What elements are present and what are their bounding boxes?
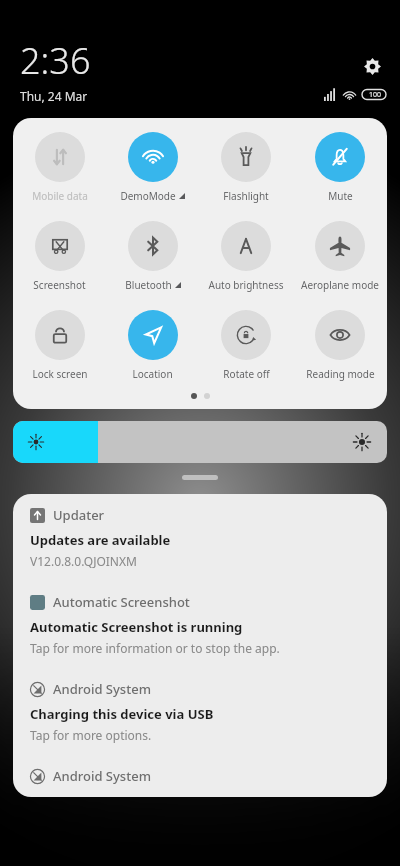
staticText: Bluetooth (125, 278, 172, 292)
staticText: Updater (53, 506, 105, 524)
button[interactable]: Updater (13, 494, 387, 581)
staticText: Android System (53, 680, 151, 698)
button[interactable]: Brightness (13, 421, 387, 463)
staticText: Thu, 24 Mar (20, 88, 88, 104)
button[interactable]: Mute (293, 130, 387, 205)
button[interactable]: Flashlight (199, 130, 293, 205)
button[interactable]: Settings (356, 50, 388, 82)
staticText: Flashlight (223, 189, 269, 203)
button[interactable]: Lock screen (13, 308, 106, 383)
staticText: Mute (328, 189, 353, 203)
staticText: Automatic Screenshot is running (30, 618, 243, 636)
staticText: Lock screen (32, 367, 88, 381)
staticText: Automatic Screenshot (53, 593, 190, 611)
button[interactable]: Screenshot (13, 219, 106, 294)
staticText: 2:36 (20, 36, 91, 85)
staticText: Location (132, 367, 173, 381)
staticText: Screenshot (33, 278, 86, 292)
staticText: Mobile data (32, 189, 88, 203)
staticText: Tap for more information or to stop the … (30, 640, 280, 656)
staticText: V12.0.8.0.QJOINXM (30, 553, 137, 569)
staticText: Auto brightness (208, 278, 284, 292)
staticText: Aeroplane mode (301, 278, 379, 292)
button[interactable]: Android System (13, 668, 387, 755)
staticText: DemoMode (120, 189, 176, 203)
button[interactable]: Aeroplane mode (293, 219, 387, 294)
staticText: 100 (369, 90, 382, 100)
button[interactable]: Mobile data (13, 130, 106, 205)
button[interactable]: Rotate off (199, 308, 293, 383)
button[interactable]: Bluetooth (106, 219, 199, 294)
staticText: Charging this device via USB (30, 705, 214, 723)
button[interactable]: Android System (13, 755, 387, 797)
button[interactable]: Reading mode (293, 308, 387, 383)
staticText: Tap for more options. (30, 727, 152, 743)
staticText: Rotate off (223, 367, 270, 381)
staticText: Updates are available (30, 531, 171, 549)
button[interactable]: DemoMode (106, 130, 199, 205)
staticText: Android System (53, 767, 151, 785)
button[interactable]: Location (106, 308, 199, 383)
button[interactable]: Auto brightness (199, 219, 293, 294)
staticText: Reading mode (306, 367, 375, 381)
button[interactable]: Expand (182, 475, 218, 480)
button[interactable]: Automatic Screenshot (13, 581, 387, 668)
